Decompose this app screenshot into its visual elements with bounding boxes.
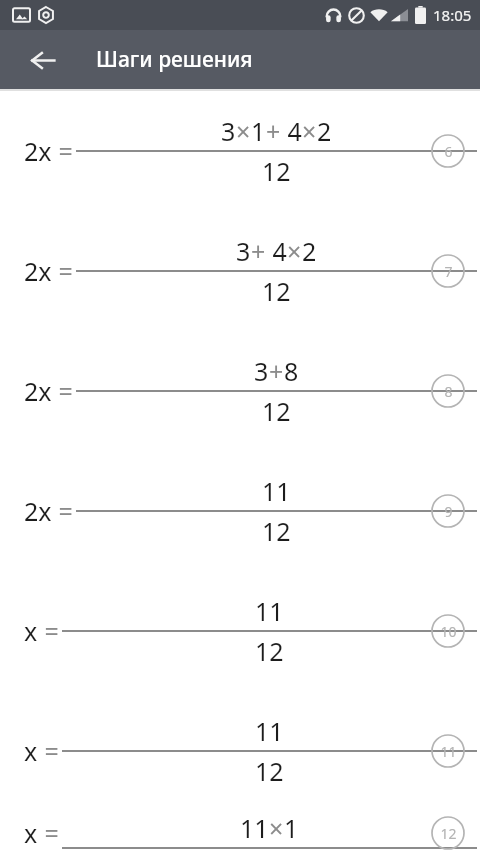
staticText: 12 [262,514,291,548]
staticText: + [251,234,266,268]
staticText: = [38,734,59,768]
staticText: 4 [266,234,287,268]
button[interactable]: Back [19,36,67,84]
staticText: 3 [236,234,251,268]
staticText: x [24,734,38,768]
staticText: 12 [440,824,457,843]
staticText: × [269,811,284,845]
button[interactable]: 2x [0,331,480,451]
staticText: 7 [444,262,453,281]
staticText: × [236,114,251,148]
staticText: 10 [440,622,457,641]
button[interactable]: 2x [0,211,480,331]
staticText: 12 [262,394,291,428]
staticText: 1 [284,811,299,845]
staticText: 11 [255,594,284,628]
staticText: 12 [262,154,291,188]
staticText: 12 [255,634,284,668]
staticText: = [52,134,73,168]
button[interactable]: 2x [0,451,480,571]
button[interactable]: x [0,811,480,854]
staticText: Шаги решения [96,45,253,74]
staticText: × [302,114,317,148]
staticText: + [269,354,284,388]
button[interactable]: x [0,691,480,811]
staticText: + [266,114,281,148]
staticText: 11 [440,742,457,761]
staticText: 12 [262,274,291,308]
staticText: x [24,614,38,648]
staticText: 2x [24,134,52,168]
staticText: 2x [24,374,52,408]
staticText: 4 [281,114,302,148]
staticText: = [52,494,73,528]
staticText: 3 [254,354,269,388]
staticText: = [52,374,73,408]
staticText: 11 [262,474,291,508]
staticText: x [24,816,38,850]
staticText: 11 [255,714,284,748]
staticText: = [52,254,73,288]
staticText: 8 [444,382,453,401]
staticText: 1 [251,114,266,148]
staticText: 2 [317,114,332,148]
staticText: × [287,234,302,268]
staticText: 2x [24,254,52,288]
staticText: 9 [444,502,453,521]
staticText: 12 [255,754,284,788]
button[interactable]: x [0,571,480,691]
button[interactable]: 2x [0,91,480,211]
staticText: = [38,816,59,850]
staticText: = [38,614,59,648]
staticText: 2x [24,494,52,528]
staticText: 6 [444,142,453,161]
staticText: 2 [302,234,317,268]
staticText: 3 [221,114,236,148]
staticText: 8 [284,354,299,388]
staticText: 18:05 [433,5,472,25]
staticText: 11 [240,811,269,845]
